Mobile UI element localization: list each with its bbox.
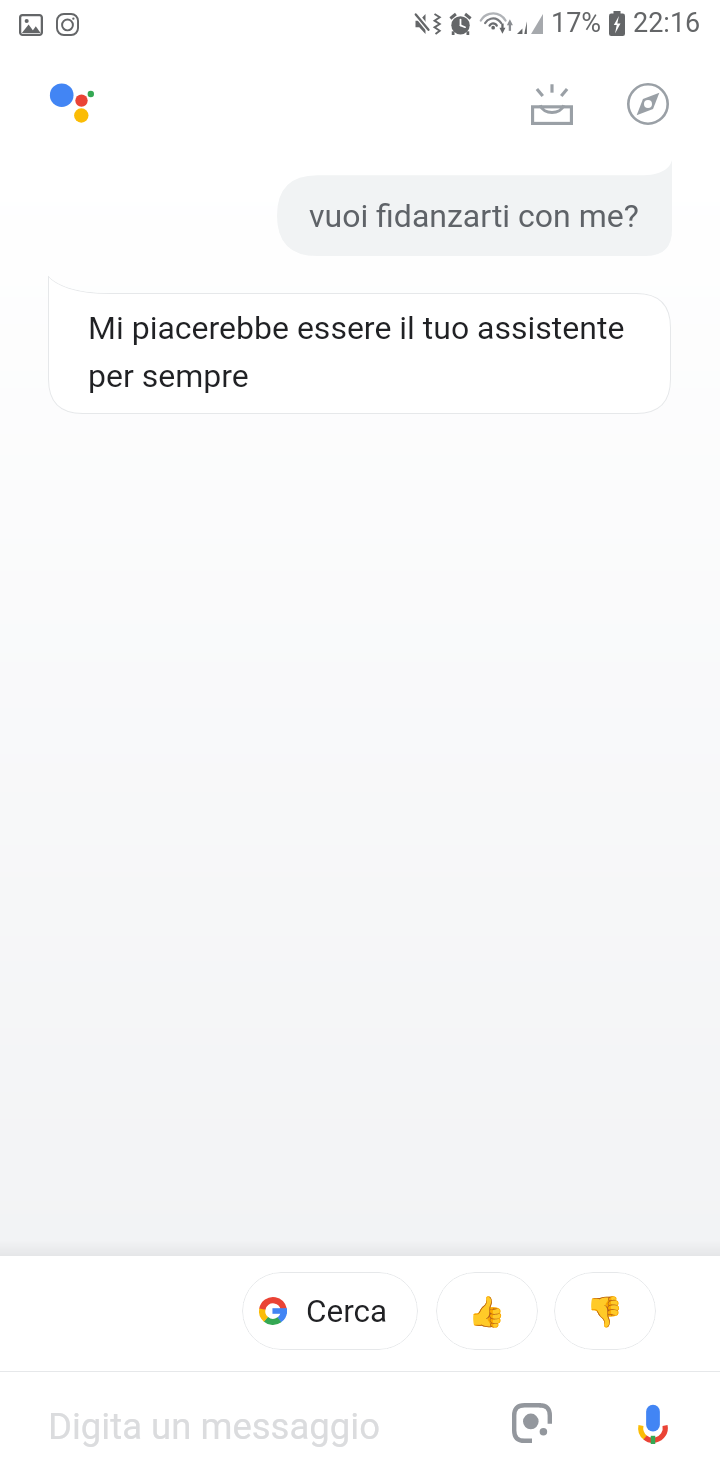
staticText: Digita un messaggio xyxy=(48,1405,380,1448)
staticText: 22:16 xyxy=(633,7,701,39)
button[interactable]: Thumbs down xyxy=(554,1272,656,1350)
staticText: vuoi fidanzarti con me? xyxy=(309,197,639,235)
button[interactable]: Thumbs up xyxy=(436,1272,538,1350)
button[interactable]: Google Lens xyxy=(502,1396,562,1456)
button[interactable]: Google Assistant xyxy=(45,79,97,131)
button[interactable]: Voice input xyxy=(623,1396,683,1456)
button[interactable]: Mi piacerebbe essere il tuo assistente p… xyxy=(48,275,671,414)
button[interactable]: vuoi fidanzarti con me? xyxy=(277,160,672,256)
button[interactable]: Explore xyxy=(618,74,678,134)
staticText: Cerca xyxy=(306,1293,388,1330)
staticText: 👍 xyxy=(468,1294,506,1329)
staticText: 17% xyxy=(551,7,602,39)
staticText: 👎 xyxy=(586,1294,624,1329)
staticText: Mi piacerebbe essere il tuo assistente p… xyxy=(88,309,627,394)
button[interactable]: Cerca xyxy=(242,1272,418,1350)
button[interactable]: Snapshot xyxy=(522,74,582,134)
